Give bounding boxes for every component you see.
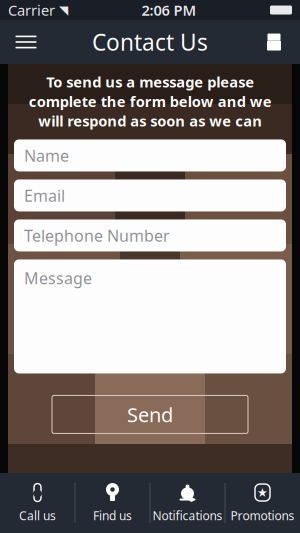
- staticText: Contact Us: [92, 27, 208, 57]
- button[interactable]: ★: [225, 473, 299, 533]
- staticText: 2:06 PM: [141, 0, 196, 20]
- staticText: Call us: [19, 507, 56, 523]
- staticText: ◥: [55, 3, 68, 17]
- button[interactable]: Menu: [4, 20, 48, 64]
- staticText: Find us: [93, 507, 132, 523]
- button[interactable]: Send: [52, 395, 248, 433]
- button[interactable]: Home: [252, 20, 296, 64]
- staticText: Notifications: [152, 507, 222, 523]
- staticText: Carrier: [8, 0, 55, 20]
- staticText: Name: [24, 145, 69, 166]
- staticText: Promotions: [230, 507, 294, 523]
- button[interactable]: Find us: [75, 473, 149, 533]
- button[interactable]: Call us: [0, 473, 74, 533]
- staticText: Message: [24, 267, 92, 289]
- staticText: Send: [127, 401, 173, 428]
- staticText: To send us a message please complete the…: [28, 72, 271, 130]
- staticText: Telephone Number: [24, 225, 170, 246]
- staticText: ★: [257, 486, 268, 499]
- staticText: Email: [24, 185, 65, 206]
- button[interactable]: Notifications: [150, 473, 224, 533]
